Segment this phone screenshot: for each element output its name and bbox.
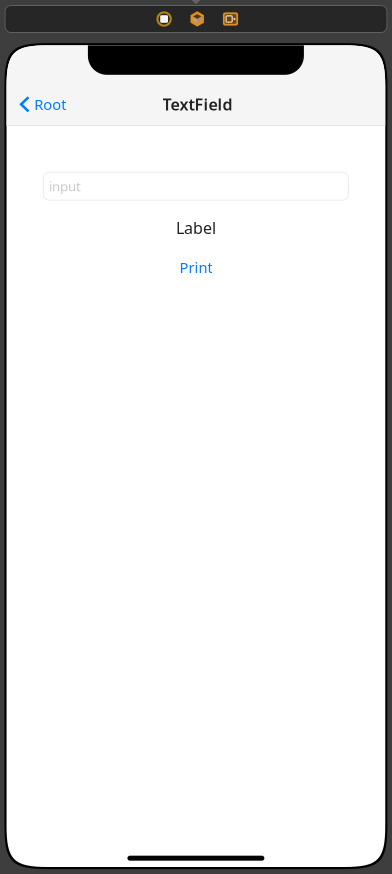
staticText: TextField [163,94,233,115]
staticText: input [49,177,81,195]
button[interactable]: Stop [156,8,173,30]
button[interactable]: Root [7,82,76,126]
button[interactable]: Debug Memory Graph [222,8,239,30]
button[interactable]: Debug View Hierarchy [189,8,206,30]
staticText: Root [34,95,66,114]
button[interactable]: Print [169,254,222,281]
staticText: Label [176,217,216,238]
staticText: Print [179,258,212,277]
